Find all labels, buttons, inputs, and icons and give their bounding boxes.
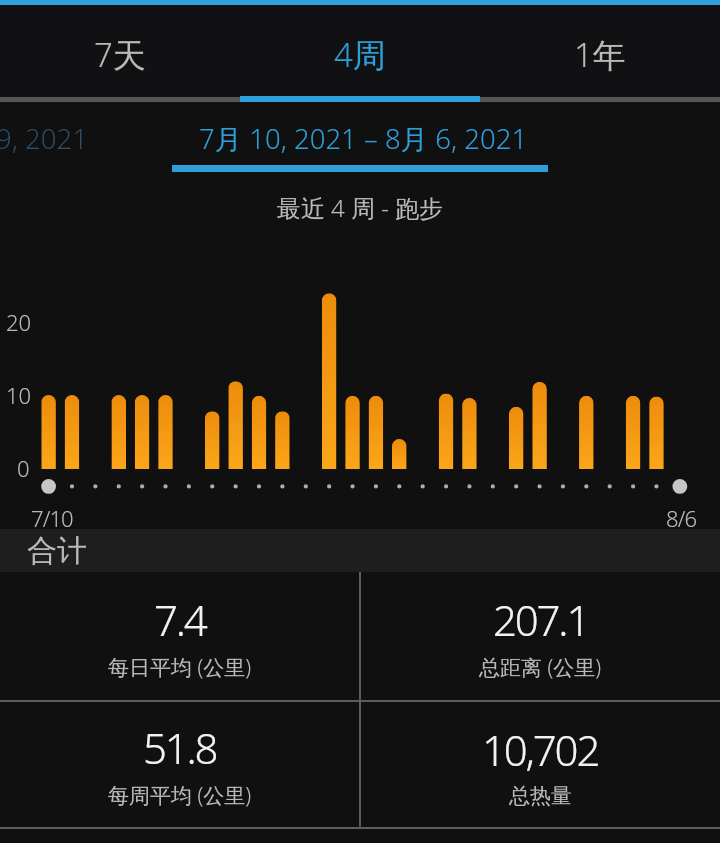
staticText: 每周平均 (公里) xyxy=(108,781,252,810)
staticText: 207.1 xyxy=(493,591,589,648)
staticText: 9, 2021 xyxy=(0,120,88,157)
button[interactable]: 51.8 xyxy=(0,702,359,827)
staticText: 7/10 xyxy=(31,503,73,533)
staticText: 每日平均 (公里) xyxy=(108,653,252,682)
staticText: 7月 10, 2021 – 8月 6, 2021 xyxy=(3,120,720,158)
staticText: 合计 xyxy=(27,532,87,570)
button[interactable]: 10,702 xyxy=(361,702,720,827)
staticText: 20 xyxy=(6,307,32,337)
button[interactable]: 4周 xyxy=(240,5,480,103)
button[interactable]: 1年 xyxy=(480,5,720,103)
staticText: 10 xyxy=(6,380,32,410)
staticText: 7天 xyxy=(94,32,146,77)
button[interactable]: 7天 xyxy=(0,5,240,103)
staticText: 4周 xyxy=(334,32,386,77)
staticText: 总热量 xyxy=(509,783,572,809)
staticText: 总距离 (公里) xyxy=(479,653,602,682)
staticText: 最近 4 周 - 跑步 xyxy=(0,191,720,224)
button[interactable]: 7月 10, 2021 – 8月 6, 2021 xyxy=(0,110,720,172)
staticText: 8/6 xyxy=(666,503,697,533)
staticText: 10,702 xyxy=(482,721,599,778)
staticText: 7.4 xyxy=(154,591,206,648)
staticText: 1年 xyxy=(574,32,626,77)
button[interactable]: 合计 xyxy=(0,529,720,572)
other: Weekly distance chart xyxy=(0,0,720,843)
staticText: 0 xyxy=(17,453,30,483)
button[interactable]: 7.4 xyxy=(0,572,359,700)
button[interactable]: 207.1 xyxy=(361,572,720,700)
staticText: 51.8 xyxy=(143,719,217,776)
